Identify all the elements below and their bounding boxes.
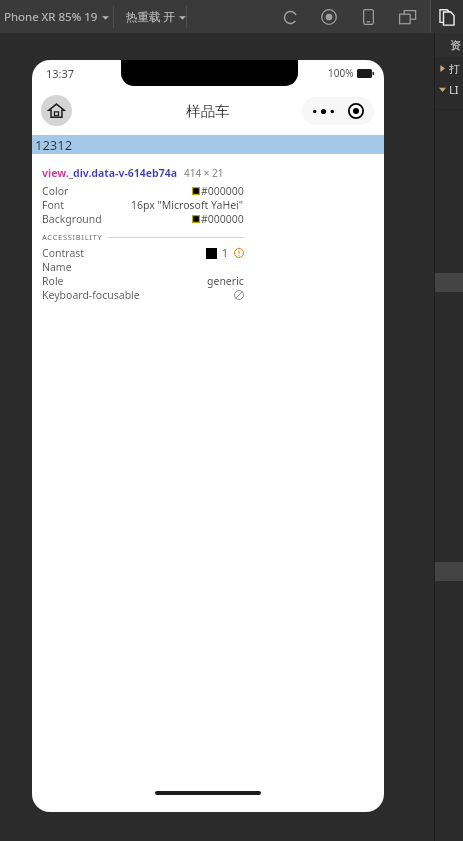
button[interactable]: Duplicate bbox=[430, 0, 463, 33]
staticText: 热重载 开 bbox=[126, 9, 175, 25]
button[interactable]: 热重载 开 bbox=[122, 5, 190, 29]
staticText: 样品车 bbox=[186, 102, 230, 120]
staticText: 资 bbox=[450, 38, 461, 52]
staticText: 414 × 21 bbox=[184, 166, 224, 180]
staticText: 100% bbox=[328, 66, 354, 80]
button[interactable]: Phone XR 85% 19 bbox=[0, 5, 117, 29]
staticText: 打 bbox=[449, 62, 460, 76]
staticText: 1 bbox=[222, 246, 229, 260]
staticText: Role bbox=[42, 274, 64, 288]
staticText: Background bbox=[42, 212, 102, 226]
staticText: Keyboard-focusable bbox=[42, 288, 140, 302]
staticText: Font bbox=[42, 198, 65, 212]
staticText: Name bbox=[42, 260, 72, 274]
staticText: 12312 bbox=[35, 136, 73, 154]
button[interactable]: Record bbox=[317, 5, 341, 29]
staticText: view._div.data-v-614eb74a bbox=[42, 166, 178, 180]
button[interactable]: Home bbox=[41, 95, 72, 126]
button[interactable]: Detach window bbox=[395, 5, 419, 29]
staticText: Phone XR 85% 19 bbox=[4, 9, 98, 25]
button[interactable]: LI bbox=[434, 81, 463, 98]
button[interactable]: 打 bbox=[434, 60, 463, 77]
button[interactable]: Device preview bbox=[356, 5, 380, 29]
staticText: ACCESSIBILITY bbox=[42, 232, 103, 242]
button[interactable]: More and close bbox=[302, 97, 374, 125]
staticText: generic bbox=[207, 274, 244, 288]
staticText: #000000 bbox=[201, 184, 244, 198]
staticText: Contrast bbox=[42, 246, 85, 260]
button[interactable]: Refresh bbox=[278, 5, 302, 29]
staticText: Color bbox=[42, 184, 69, 198]
staticText: 16px "Microsoft YaHei" bbox=[131, 198, 244, 212]
staticText: 13:37 bbox=[46, 66, 75, 81]
staticText: #000000 bbox=[201, 212, 244, 226]
staticText: LI bbox=[449, 82, 459, 97]
